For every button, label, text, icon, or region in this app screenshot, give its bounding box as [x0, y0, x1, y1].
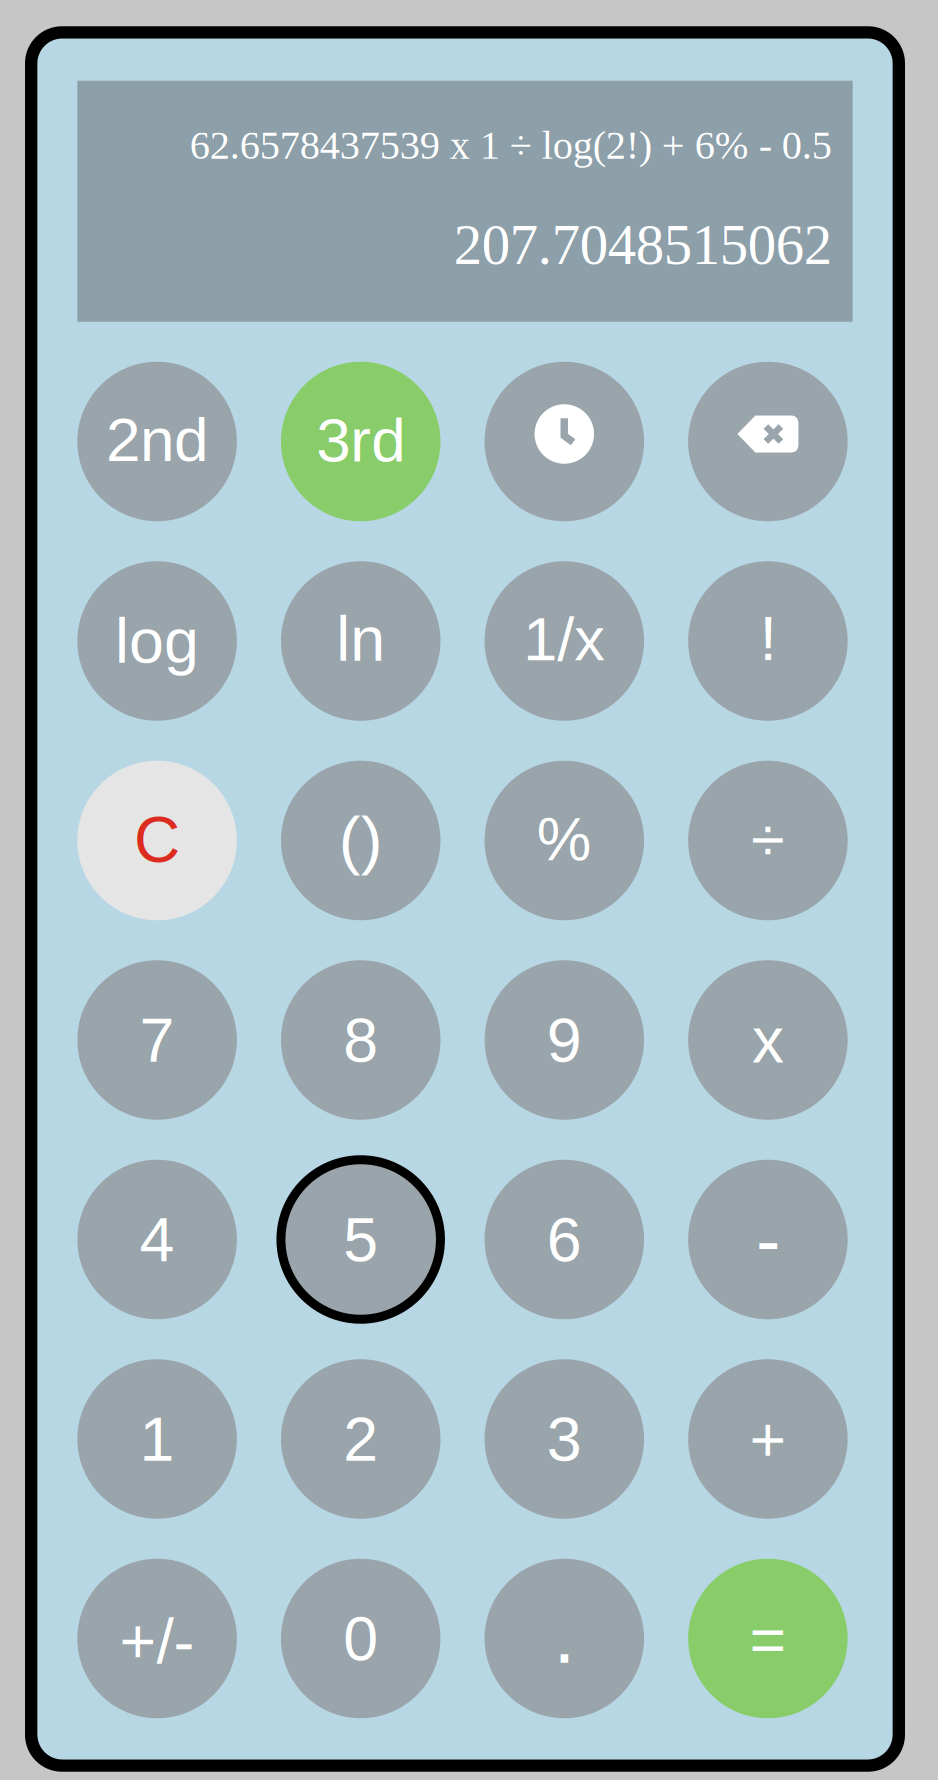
button[interactable]: +/-: [77, 1559, 237, 1718]
staticText: .: [553, 1590, 575, 1680]
staticText: =: [749, 1605, 786, 1675]
button[interactable]: =: [688, 1559, 848, 1718]
button[interactable]: ÷: [688, 761, 848, 920]
button[interactable]: 2: [281, 1359, 440, 1519]
staticText: 3: [547, 1404, 582, 1474]
staticText: 5: [343, 1204, 378, 1274]
staticText: %: [537, 805, 592, 873]
button[interactable]: 0: [281, 1559, 440, 1718]
staticText: 3rd: [316, 405, 405, 475]
staticText: -: [756, 1199, 780, 1281]
button[interactable]: 7: [77, 960, 237, 1120]
button[interactable]: 3: [485, 1359, 644, 1519]
button[interactable]: !: [688, 561, 848, 721]
button[interactable]: 1: [77, 1359, 237, 1519]
staticText: 7: [140, 1005, 175, 1075]
button[interactable]: History: [485, 362, 644, 521]
button[interactable]: (): [281, 761, 440, 920]
staticText: !: [759, 603, 776, 673]
button[interactable]: 1/x: [485, 561, 644, 721]
staticText: ÷: [751, 806, 785, 874]
button[interactable]: 6: [485, 1160, 644, 1319]
staticText: 1: [140, 1404, 175, 1474]
staticText: +/-: [120, 1606, 195, 1676]
button[interactable]: 9: [485, 960, 644, 1120]
button[interactable]: -: [688, 1160, 848, 1319]
button[interactable]: C: [77, 761, 237, 920]
staticText: 2nd: [106, 405, 208, 474]
button[interactable]: 4: [77, 1160, 237, 1319]
button[interactable]: Delete: [688, 362, 848, 521]
staticText: 207.7048515062: [454, 213, 832, 276]
staticText: 9: [547, 1005, 582, 1075]
staticText: C: [134, 804, 180, 875]
staticText: x: [752, 1004, 784, 1076]
button[interactable]: 5: [281, 1160, 440, 1319]
staticText: log: [115, 606, 199, 676]
button[interactable]: x: [688, 960, 848, 1120]
staticText: 2: [343, 1404, 378, 1474]
button[interactable]: %: [485, 761, 644, 920]
staticText: 8: [343, 1005, 378, 1075]
staticText: 6: [547, 1204, 582, 1274]
button[interactable]: .: [485, 1559, 644, 1718]
button[interactable]: 3rd: [281, 362, 440, 521]
staticText: 1/x: [523, 605, 605, 673]
staticText: 0: [343, 1603, 378, 1673]
button[interactable]: +: [688, 1359, 848, 1519]
staticText: +: [749, 1405, 786, 1475]
button[interactable]: 8: [281, 960, 440, 1120]
button[interactable]: log: [77, 561, 237, 721]
staticText: (): [339, 803, 383, 876]
staticText: 4: [140, 1204, 175, 1274]
staticText: ln: [336, 604, 385, 674]
button[interactable]: ln: [281, 561, 440, 721]
staticText: 62.6578437539 x 1 ÷ log(2!) + 6% - 0.5: [190, 123, 832, 167]
button[interactable]: 2nd: [77, 362, 237, 521]
